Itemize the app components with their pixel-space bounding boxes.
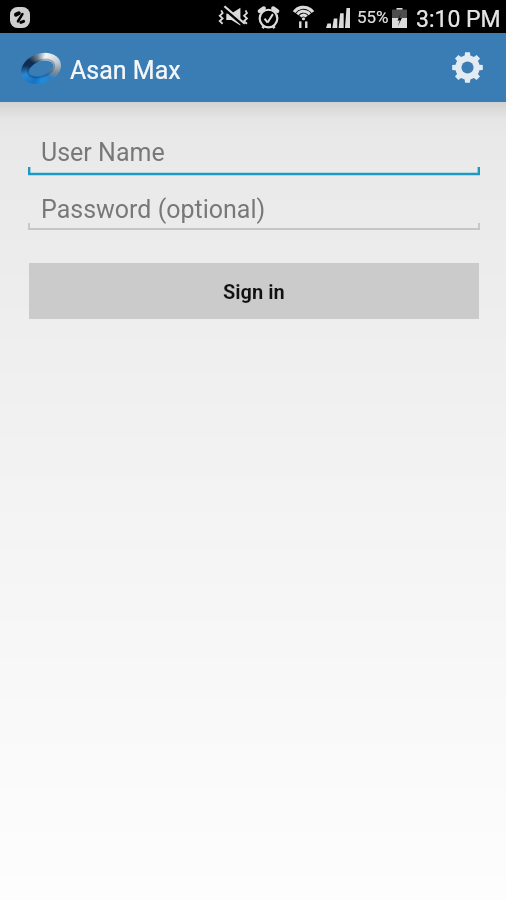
- staticText: Password (optional): [41, 195, 266, 224]
- button[interactable]: Password (optional): [28, 190, 480, 232]
- button[interactable]: User Name: [28, 134, 480, 176]
- staticText: 55%: [357, 7, 389, 27]
- button[interactable]: Sign in: [29, 263, 479, 319]
- button[interactable]: Settings: [445, 33, 489, 102]
- staticText: 3:10 PM: [416, 6, 501, 33]
- staticText: Sign in: [223, 280, 285, 303]
- staticText: User Name: [41, 138, 165, 167]
- staticText: Asan Max: [70, 56, 181, 85]
